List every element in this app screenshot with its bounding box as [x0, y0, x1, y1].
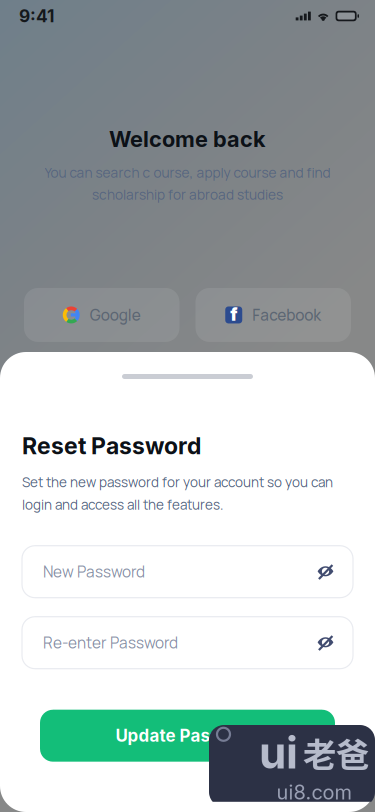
staticText: Update Password [115, 725, 259, 746]
staticText: 9:41 [19, 5, 54, 26]
staticText: scholarship for abroad studies [92, 185, 283, 204]
staticText: Set the new password for your account so… [22, 473, 333, 491]
staticText: Google [90, 304, 141, 325]
staticText: Welcome back [109, 126, 266, 152]
staticText: Facebook [252, 304, 321, 325]
staticText: ui [259, 726, 298, 779]
staticText: f [230, 304, 237, 325]
staticText: Re-enter Password [43, 632, 178, 653]
staticText: New Password [43, 561, 145, 582]
button[interactable]: New Password [22, 546, 353, 598]
staticText: Reset Password [22, 432, 201, 460]
button[interactable]: Update Password [40, 710, 335, 762]
staticText: login and access all the features. [22, 495, 223, 514]
staticText: 老爸 [303, 728, 369, 777]
staticText: ui8.com [276, 780, 351, 804]
button[interactable]: Re-enter Password [22, 617, 353, 669]
button[interactable]: Google [24, 288, 179, 342]
staticText: You can search c ourse, apply course and… [44, 163, 330, 182]
button[interactable]: f [195, 288, 351, 342]
